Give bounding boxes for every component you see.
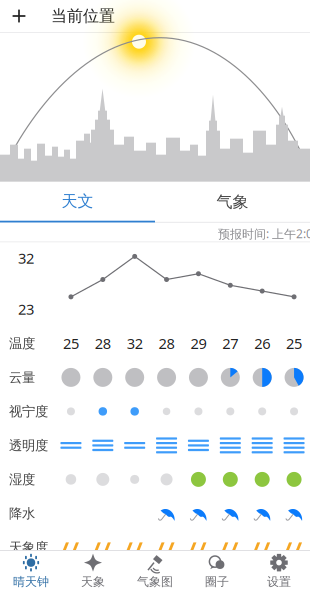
staticText: 27 — [222, 334, 238, 353]
staticText: 透明度 — [9, 437, 48, 454]
staticText: 天象 — [81, 574, 105, 589]
button[interactable]: 气象图 — [124, 551, 186, 592]
staticText: 预报时间: 上午2:00 — [218, 226, 310, 242]
staticText: 晴天钟 — [13, 574, 49, 589]
staticText: 云量 — [9, 369, 35, 386]
staticText: 湿度 — [9, 471, 35, 488]
staticText: 视宁度 — [9, 403, 48, 420]
staticText: 23 — [18, 299, 34, 319]
button[interactable]: Add location — [0, 0, 38, 32]
button[interactable]: 圈子 — [186, 551, 248, 592]
button[interactable]: 气象 — [155, 182, 310, 223]
staticText: 32 — [127, 334, 143, 353]
staticText: 当前位置 — [51, 6, 115, 26]
staticText: 28 — [95, 334, 111, 353]
staticText: 气象 — [216, 192, 248, 212]
staticText: 设置 — [267, 574, 291, 589]
staticText: 25 — [63, 334, 79, 353]
staticText: 天文 — [61, 191, 93, 211]
button[interactable]: 当前位置 — [48, 0, 118, 32]
staticText: 天象度 — [9, 539, 48, 556]
staticText: 26 — [254, 334, 270, 353]
staticText: 温度 — [9, 335, 35, 352]
button[interactable]: 晴天钟 — [0, 551, 62, 592]
staticText: 32 — [18, 248, 34, 268]
staticText: 28 — [159, 334, 175, 353]
button[interactable]: 天象 — [62, 551, 124, 592]
staticText: 圈子 — [205, 574, 229, 589]
button[interactable]: 天文 — [0, 182, 155, 223]
button[interactable]: 设置 — [248, 551, 310, 592]
staticText: 气象图 — [137, 574, 173, 589]
staticText: 25 — [286, 334, 302, 353]
staticText: 29 — [190, 334, 206, 353]
staticText: 降水 — [9, 505, 35, 522]
